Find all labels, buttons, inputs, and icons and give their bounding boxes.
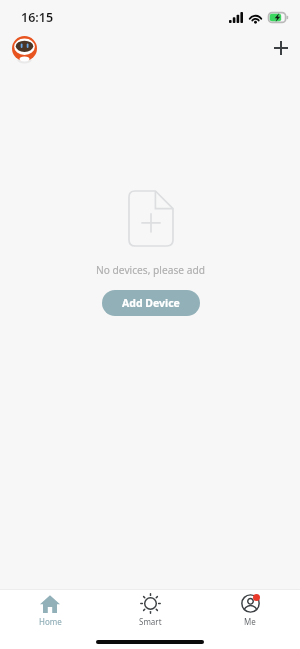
staticText: No devices, please add xyxy=(96,263,205,277)
staticText: Add Device xyxy=(122,296,180,310)
staticText: Smart xyxy=(139,616,162,627)
staticText: Me xyxy=(244,616,256,627)
button[interactable]: Home xyxy=(0,595,100,627)
button[interactable]: Smart xyxy=(100,594,200,627)
button[interactable]: Add Device xyxy=(102,290,200,316)
staticText: 16:15 xyxy=(21,9,54,26)
button[interactable]: Add xyxy=(268,35,294,61)
button[interactable]: Me xyxy=(200,594,300,627)
button[interactable]: App logo xyxy=(12,36,37,64)
staticText: Home xyxy=(39,616,62,627)
